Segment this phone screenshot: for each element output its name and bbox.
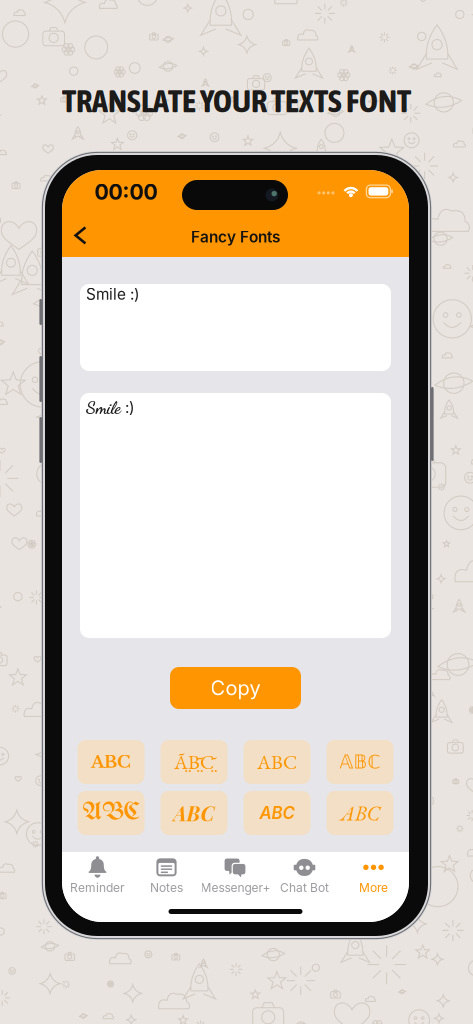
staticText: 00:00: [94, 179, 157, 205]
staticText: ABC: [82, 801, 139, 825]
button[interactable]: ABC: [77, 791, 144, 835]
button[interactable]: Chat Bot: [270, 854, 339, 898]
staticText: More: [359, 880, 388, 895]
button[interactable]: Back: [62, 214, 102, 257]
staticText: Smile :): [86, 285, 140, 304]
button[interactable]: ABC: [77, 740, 144, 784]
staticText: Messenger+: [200, 880, 270, 895]
button[interactable]: Notes: [132, 854, 201, 898]
button[interactable]: More: [339, 854, 408, 898]
staticText: Copy: [210, 676, 260, 700]
staticText: Ã̤B̤̃C̤̃: [174, 749, 214, 775]
button[interactable]: ABC: [160, 791, 227, 835]
staticText: :): [121, 398, 135, 417]
staticText: 𝔸𝔹ℂ: [339, 751, 380, 773]
button[interactable]: Reminder: [63, 854, 132, 898]
staticText: ABC: [340, 799, 379, 827]
staticText: Smile: [86, 397, 121, 418]
button[interactable]: ABC: [326, 791, 393, 835]
staticText: Fancy Fonts: [191, 228, 280, 246]
button[interactable]: Ã̤B̤̃C̤̃: [160, 740, 227, 784]
staticText: Reminder: [70, 880, 125, 895]
staticText: ABC: [91, 752, 131, 772]
staticText: TRANSLATE YOUR TEXTS FONT: [62, 82, 411, 119]
button[interactable]: Copy: [170, 667, 301, 709]
button[interactable]: Messenger+: [201, 854, 270, 898]
staticText: Notes: [150, 880, 183, 895]
button[interactable]: 𝔸𝔹ℂ: [326, 740, 393, 784]
button[interactable]: ABC: [243, 740, 310, 784]
staticText: ABC: [259, 803, 294, 823]
button[interactable]: ABC: [243, 791, 310, 835]
staticText: ABC: [173, 800, 214, 826]
staticText: ABC: [257, 749, 297, 775]
staticText: Chat Bot: [280, 880, 329, 895]
